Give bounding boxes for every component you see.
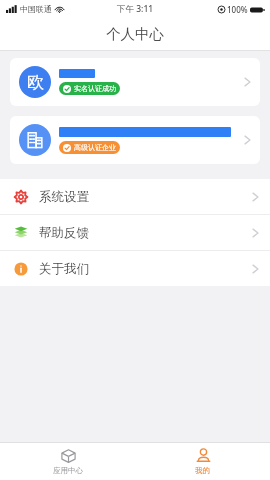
staticText: 实名认证成功 (74, 84, 116, 93)
button[interactable]: 应用中心 (0, 443, 135, 480)
staticText: 个人中心 (106, 25, 164, 43)
button[interactable]: 我的 (135, 443, 270, 480)
staticText: 欧 (27, 72, 44, 93)
button[interactable]: 系统设置 (0, 179, 270, 214)
staticText: 我的 (195, 466, 210, 475)
staticText: 100% (227, 4, 248, 15)
button[interactable]: 帮助反馈 (0, 215, 270, 250)
staticText: 高级认证企业 (74, 143, 116, 152)
staticText: 帮助反馈 (39, 225, 252, 241)
button[interactable]: 欧 (10, 58, 260, 106)
staticText: 应用中心 (53, 466, 83, 475)
staticText: 关于我们 (39, 261, 252, 277)
button[interactable]: 关于我们 (0, 251, 270, 286)
staticText: 系统设置 (39, 189, 252, 205)
button[interactable]: 高级认证企业 (10, 116, 260, 164)
staticText: 下午 3:11 (117, 3, 154, 15)
staticText: 中国联通 (20, 4, 52, 14)
